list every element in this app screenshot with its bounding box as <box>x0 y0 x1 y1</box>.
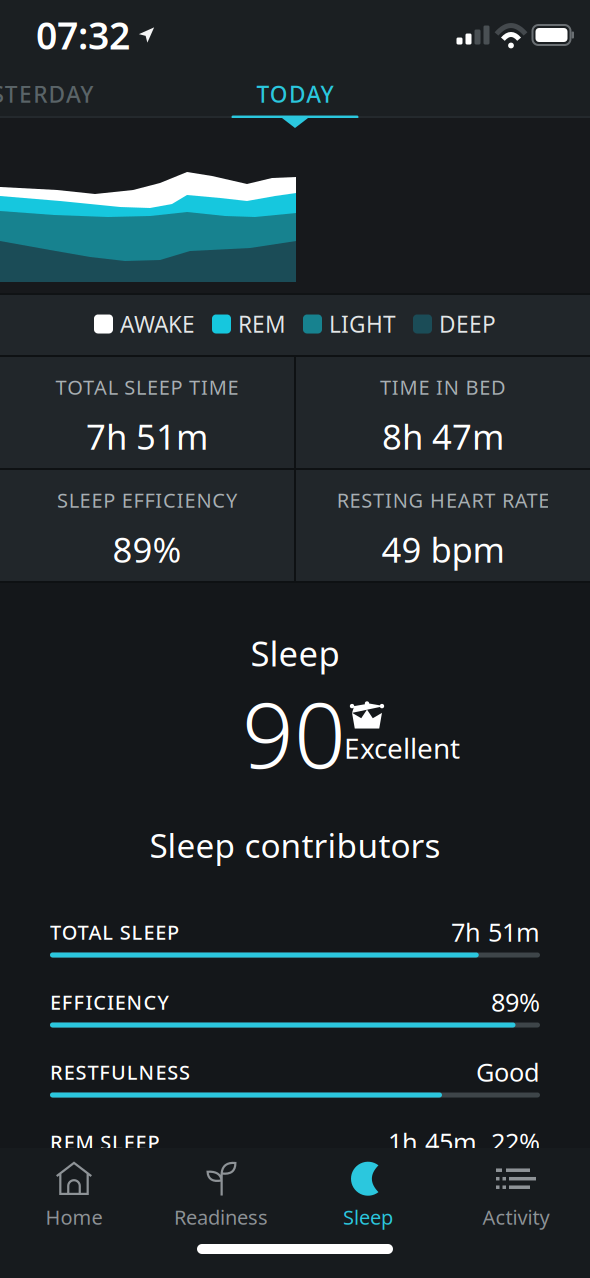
staticText: TIME IN BED <box>380 374 506 400</box>
staticText: Sleep <box>343 1204 393 1230</box>
button[interactable]: Home <box>4 1156 144 1236</box>
staticText: Excellent <box>344 729 460 767</box>
staticText: LIGHT <box>329 309 396 339</box>
staticText: RESTFULNESS <box>50 1059 190 1085</box>
button[interactable]: Activity <box>446 1156 586 1236</box>
staticText: Activity <box>482 1204 549 1230</box>
staticText: SLEEP EFFICIENCY <box>57 487 237 513</box>
staticText: AWAKE <box>120 309 195 339</box>
staticText: 89% <box>491 985 540 1019</box>
staticText: 8h 47m <box>382 413 504 459</box>
button[interactable]: YESTERDAY <box>0 72 128 116</box>
staticText: YESTERDAY <box>0 79 93 109</box>
button[interactable]: TODAY <box>195 72 395 116</box>
staticText: DEEP <box>439 309 496 339</box>
staticText: 90 <box>242 673 346 793</box>
staticText: TOTAL SLEEP TIME <box>55 374 238 400</box>
staticText: Sleep <box>250 630 339 676</box>
button[interactable]: Sleep <box>298 1156 438 1236</box>
staticText: REM SLEEP <box>50 1129 159 1155</box>
staticText: REM <box>238 309 286 339</box>
button[interactable]: Readiness <box>151 1156 291 1236</box>
staticText: 1h 45m, 22% <box>388 1125 540 1159</box>
staticText: 7h 51m <box>451 915 540 949</box>
staticText: 7h 51m <box>86 413 208 459</box>
staticText: Readiness <box>174 1204 268 1230</box>
staticText: EFFICIENCY <box>50 989 169 1015</box>
staticText: Good <box>476 1055 540 1089</box>
staticText: Home <box>45 1204 102 1230</box>
staticText: TODAY <box>256 79 334 109</box>
staticText: 07:32 <box>36 10 130 60</box>
staticText: TOTAL SLEEP <box>50 919 179 945</box>
staticText: 89% <box>112 526 181 572</box>
staticText: 49 bpm <box>381 526 504 572</box>
staticText: RESTING HEART RATE <box>337 487 549 513</box>
staticText: Sleep contributors <box>149 823 440 867</box>
